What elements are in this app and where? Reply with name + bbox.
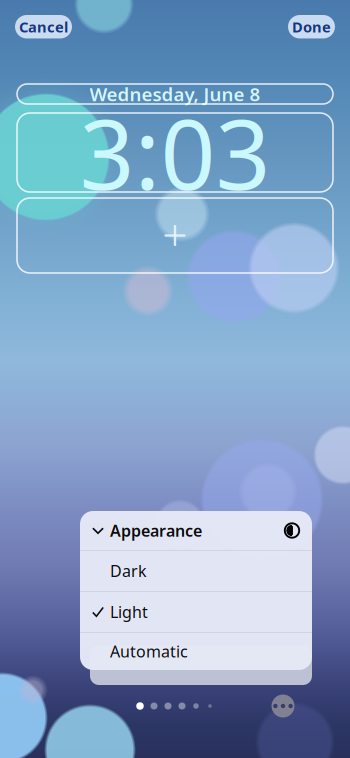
button[interactable]: Done <box>288 15 335 38</box>
button[interactable]: Dark <box>80 551 312 591</box>
button[interactable]: Cancel <box>15 15 72 38</box>
staticText: Light <box>110 601 148 622</box>
button[interactable]: Light <box>80 592 312 632</box>
staticText: Automatic <box>110 641 188 662</box>
staticText: Done <box>292 17 331 36</box>
staticText: Cancel <box>19 17 68 36</box>
button[interactable]: Wednesday, June 8 <box>17 84 333 104</box>
button[interactable]: Add widgets <box>17 198 333 273</box>
button[interactable]: 3:03 <box>17 113 333 192</box>
staticText: Dark <box>110 560 147 581</box>
staticText: 3:03 <box>79 89 270 216</box>
button[interactable]: Appearance <box>80 511 312 550</box>
button[interactable]: More options <box>261 688 305 724</box>
staticText: Wednesday, June 8 <box>89 82 260 106</box>
button[interactable]: Automatic <box>80 633 312 670</box>
staticText: Appearance <box>110 520 202 541</box>
